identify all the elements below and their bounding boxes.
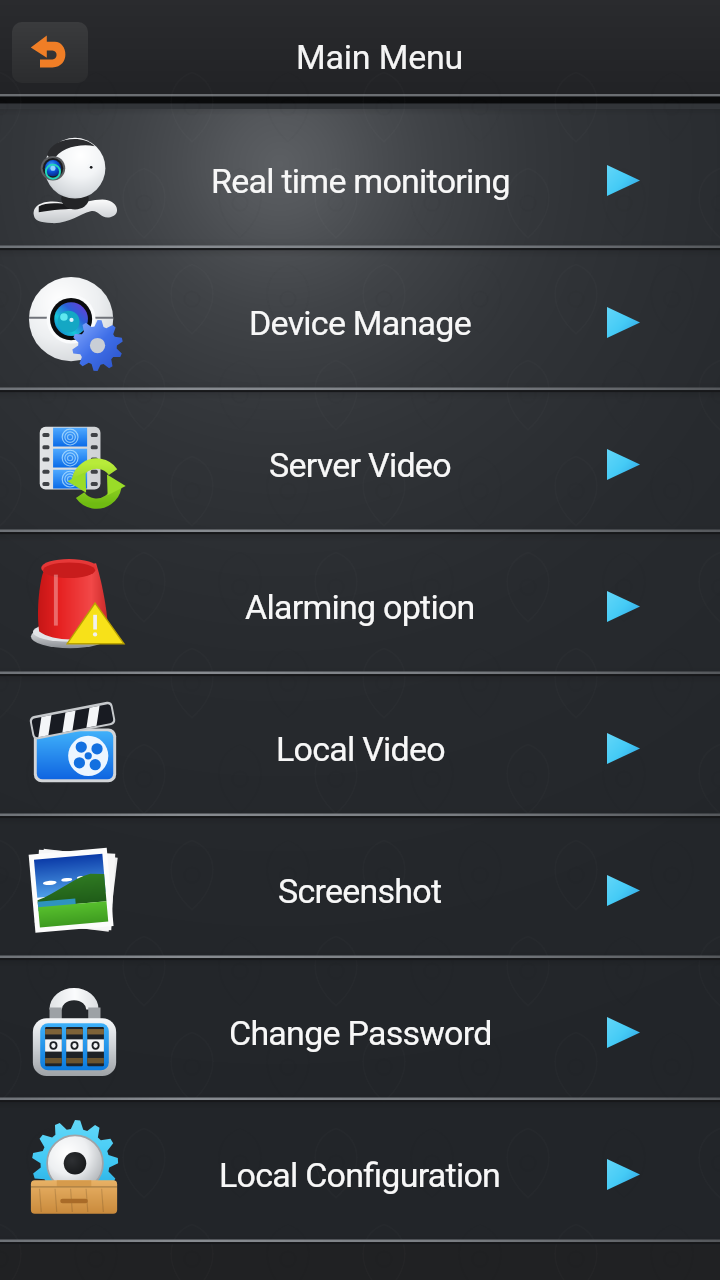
button[interactable]: Back [12,22,88,83]
button[interactable]: Server Video [0,393,720,535]
button[interactable]: Local Video [0,677,720,819]
button[interactable]: Alarming option [0,535,720,677]
staticText: Local Configuration [219,1155,501,1195]
button[interactable]: Local Configuration [0,1103,720,1245]
button[interactable]: Real time monitoring [0,109,720,251]
button[interactable]: Change Password [0,961,720,1103]
staticText: Local Video [276,729,445,769]
staticText: Change Password [229,1013,492,1053]
button[interactable]: Screenshot [0,819,720,961]
staticText: Screenshot [278,871,442,911]
staticText: Alarming option [245,587,475,627]
staticText: Main Menu [296,37,464,77]
staticText: Server Video [269,445,451,485]
staticText: Real time monitoring [211,161,510,201]
button[interactable]: Device Manage [0,251,720,393]
staticText: Device Manage [249,303,471,343]
